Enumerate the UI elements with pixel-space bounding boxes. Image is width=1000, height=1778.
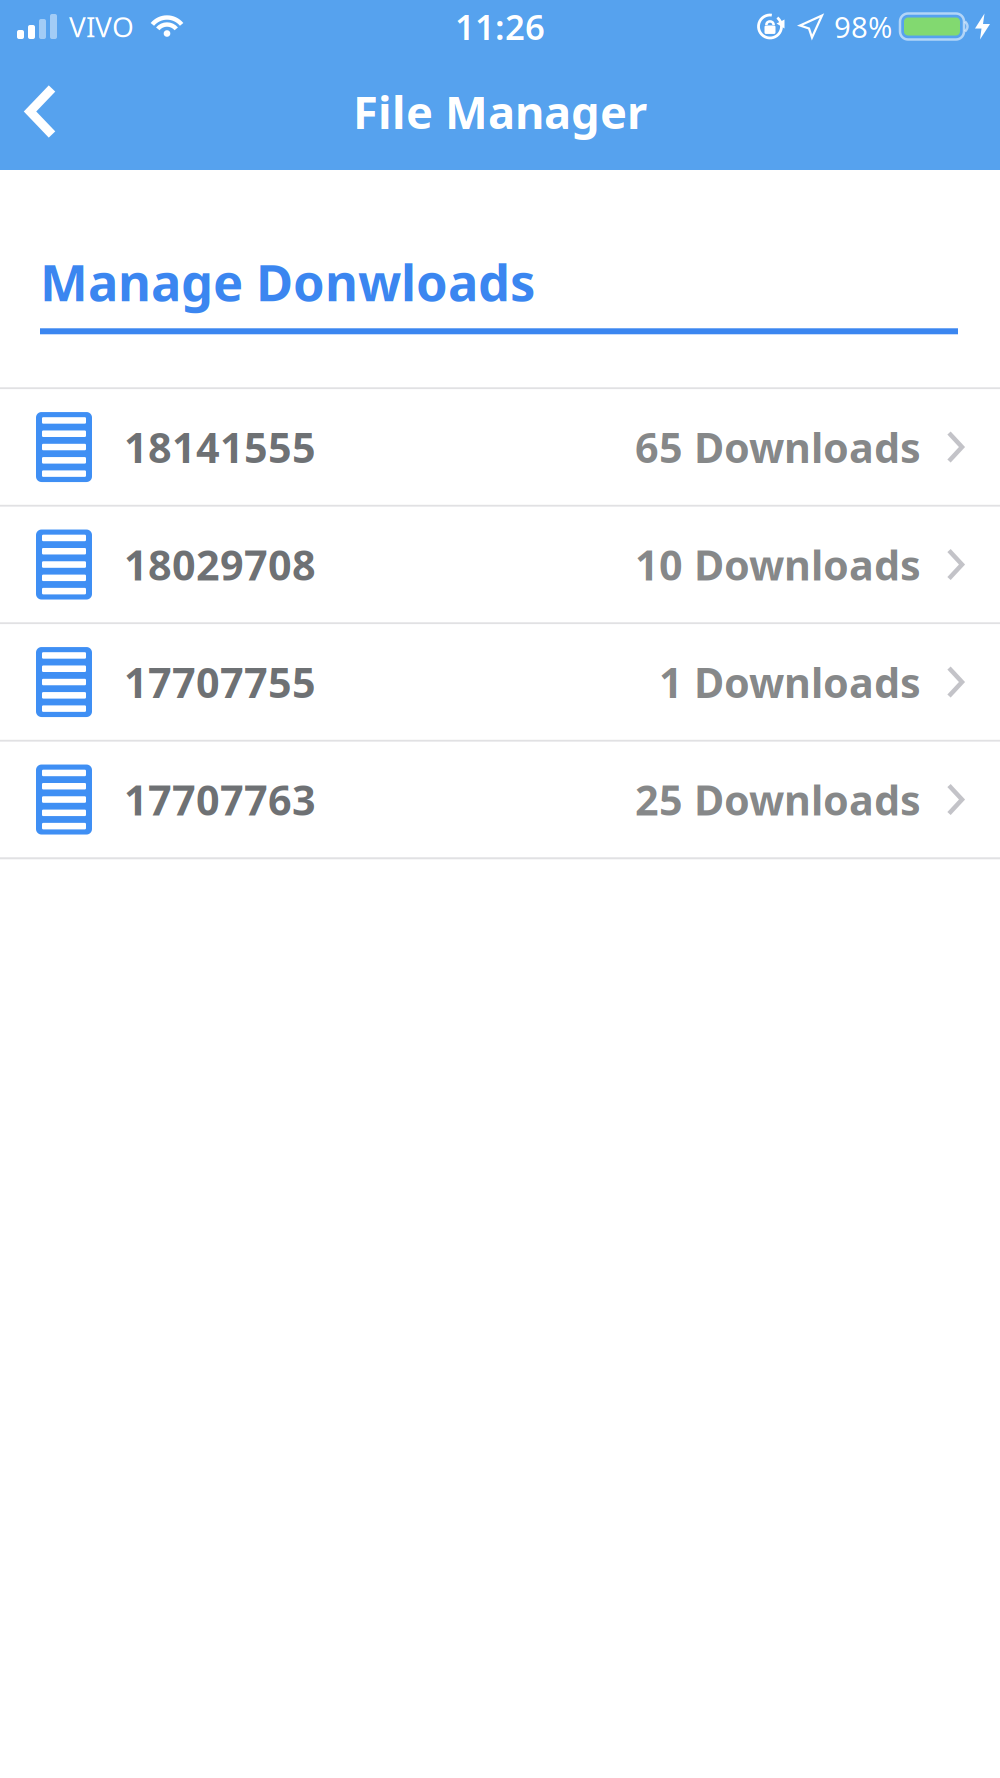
staticText: 10 Downloads bbox=[635, 537, 921, 592]
button[interactable]: 18141555 bbox=[0, 389, 1000, 505]
button[interactable]: 18029708 bbox=[0, 507, 1000, 622]
staticText: 11:26 bbox=[455, 3, 545, 49]
staticText: Manage Donwloads bbox=[40, 248, 535, 315]
staticText: 18141555 bbox=[124, 420, 316, 474]
staticText: 17707763 bbox=[124, 772, 316, 827]
staticText: 65 Downloads bbox=[635, 420, 921, 474]
staticText: 1 Downloads bbox=[659, 655, 921, 709]
staticText: File Manager bbox=[353, 81, 647, 142]
button[interactable]: 17707755 bbox=[0, 624, 1000, 740]
staticText: 17707755 bbox=[124, 655, 316, 709]
staticText: 98% bbox=[834, 7, 892, 46]
staticText: VIVO bbox=[69, 8, 134, 45]
staticText: 25 Downloads bbox=[635, 772, 921, 827]
staticText: 18029708 bbox=[124, 537, 316, 592]
button[interactable]: 17707763 bbox=[0, 742, 1000, 857]
button[interactable]: Back bbox=[0, 54, 58, 168]
